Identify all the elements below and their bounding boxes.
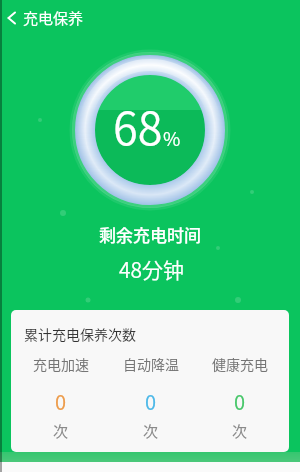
staticText: 累计充电保养次数 <box>24 324 136 344</box>
button[interactable]: 健康充电 <box>195 310 284 452</box>
staticText: 次 <box>53 420 69 442</box>
staticText: 自动降温 <box>123 354 179 374</box>
button[interactable]: 自动降温 <box>106 310 195 452</box>
staticText: 充电加速 <box>33 354 89 374</box>
staticText: 剩余充电时间 <box>99 222 201 247</box>
staticText: 48分钟 <box>119 254 185 284</box>
staticText: % <box>163 124 181 152</box>
staticText: 次 <box>232 420 248 442</box>
staticText: 0 <box>145 387 157 416</box>
staticText: 0 <box>55 387 67 416</box>
staticText: 次 <box>143 420 159 442</box>
staticText: 健康充电 <box>212 354 268 374</box>
staticText: 0 <box>234 387 246 416</box>
button[interactable]: 充电加速 <box>16 310 106 452</box>
staticText: 充电保养 <box>23 7 84 29</box>
staticText: 68 <box>113 93 163 158</box>
button[interactable]: 充电保养 <box>0 4 84 32</box>
